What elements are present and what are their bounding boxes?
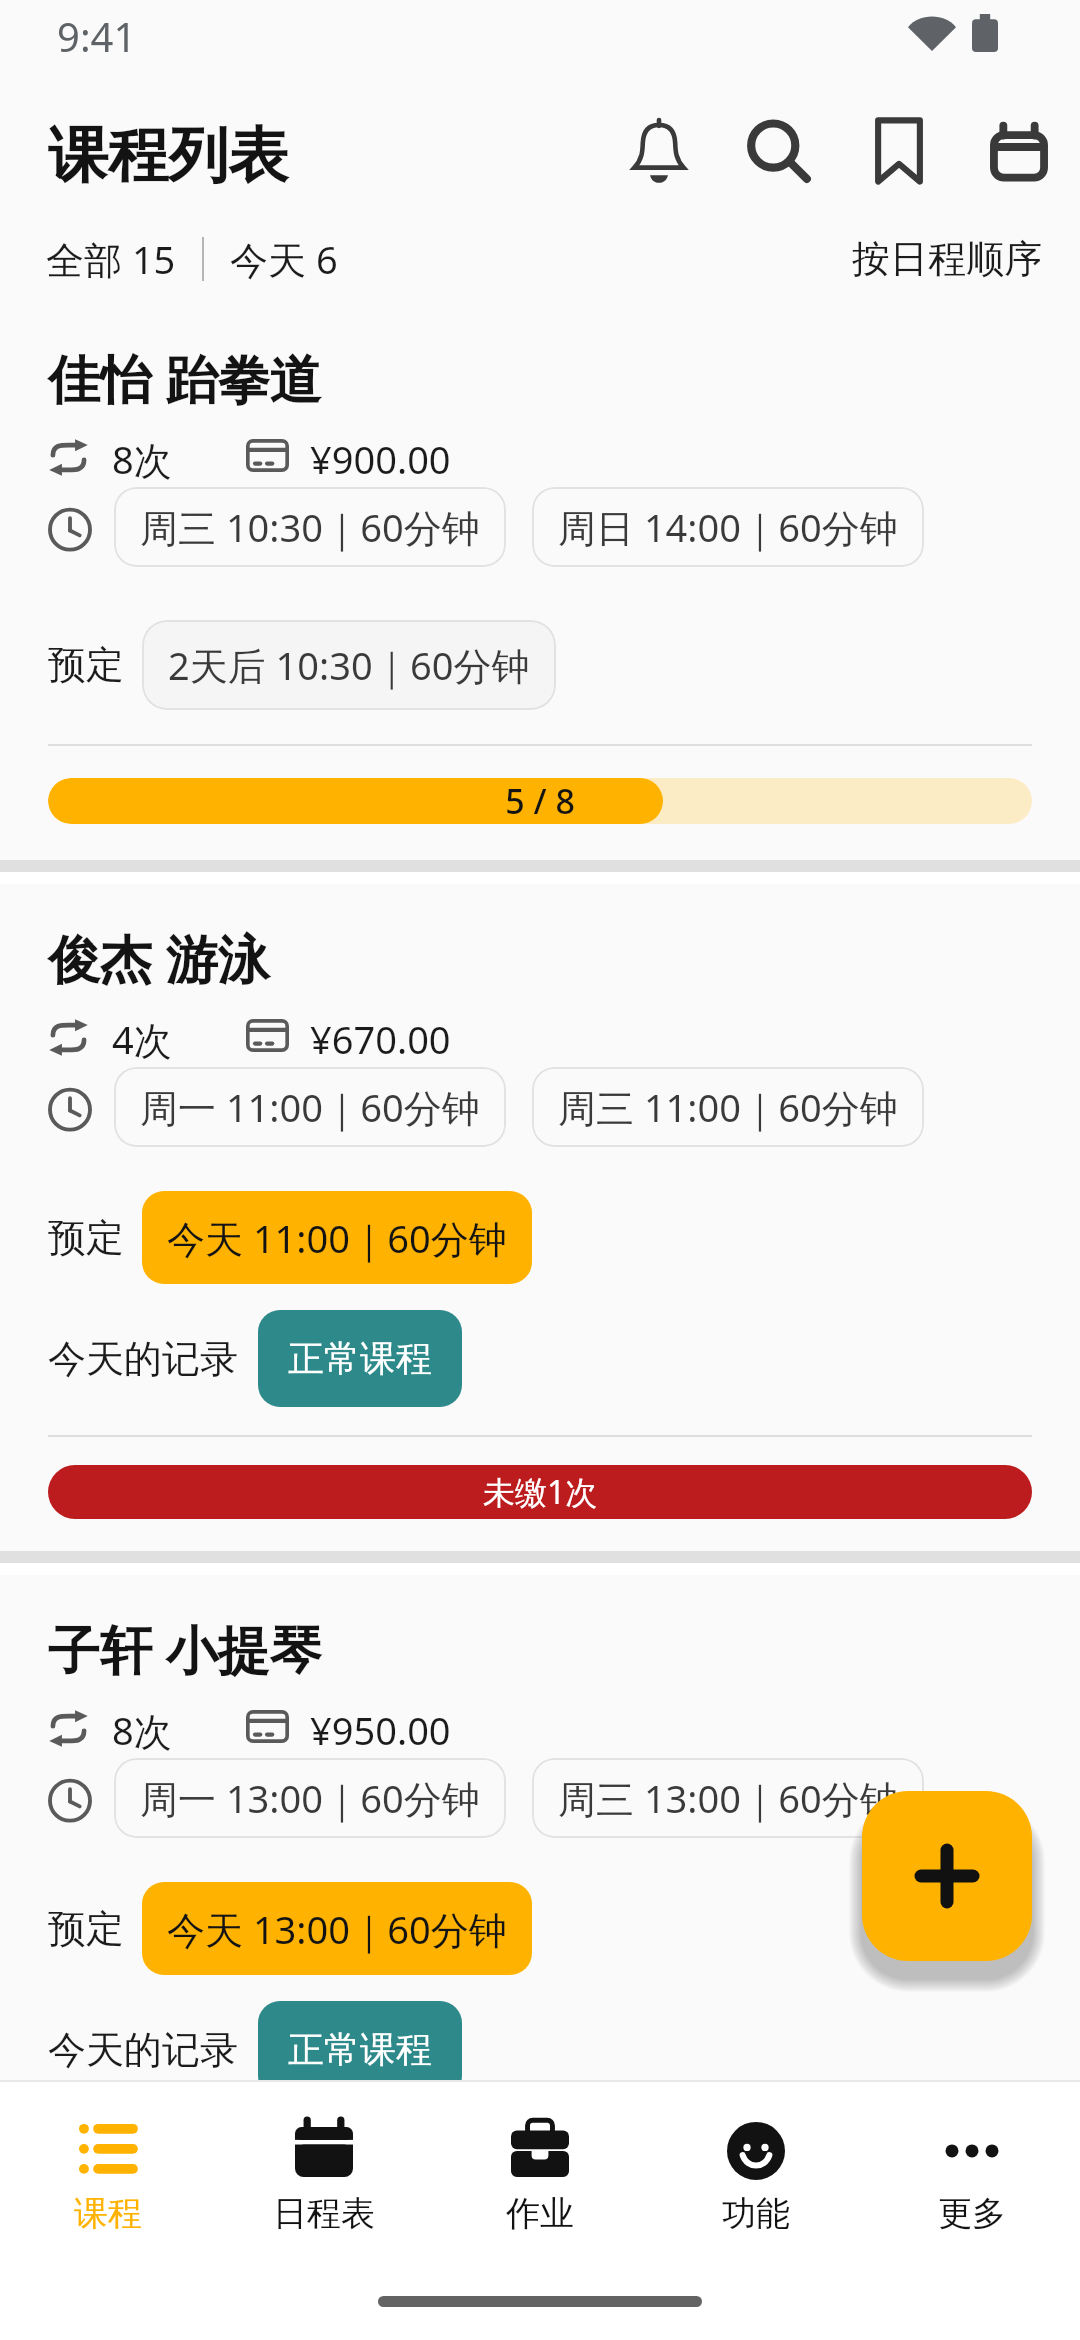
staticText: 周三 11:00｜60分钟 xyxy=(558,1081,898,1133)
staticText: 周日 14:00｜60分钟 xyxy=(558,501,898,553)
button[interactable]: 周一 11:00｜60分钟 xyxy=(114,1067,506,1147)
staticText: 更多 xyxy=(938,2192,1006,2235)
staticText: 周三 10:30｜60分钟 xyxy=(140,501,480,553)
button[interactable]: Add course xyxy=(862,1791,1032,1961)
staticText: ¥670.00 xyxy=(310,1013,451,1065)
button[interactable]: 课程 xyxy=(0,2117,216,2237)
staticText: 5 / 8 xyxy=(48,778,1032,824)
staticText: 功能 xyxy=(722,2192,790,2235)
staticText: 未缴1次 xyxy=(483,1470,598,1514)
button[interactable]: 功能 xyxy=(648,2117,864,2237)
staticText: 4次 xyxy=(112,1013,172,1065)
staticText: 今天的记录 xyxy=(48,1335,238,1383)
button[interactable]: 更多 xyxy=(864,2117,1080,2237)
button[interactable]: 作业 xyxy=(432,2117,648,2237)
staticText: 9:41 xyxy=(57,9,137,63)
staticText: 周一 11:00｜60分钟 xyxy=(140,1081,480,1133)
staticText: 正常课程 xyxy=(288,2027,432,2072)
staticText: ¥950.00 xyxy=(310,1704,451,1756)
button[interactable]: 周三 10:30｜60分钟 xyxy=(114,487,506,567)
staticText: 佳怡 跆拳道 xyxy=(48,342,322,413)
button[interactable]: 今天 11:00｜60分钟 xyxy=(142,1191,532,1284)
staticText: 日程表 xyxy=(273,2192,375,2235)
staticText: 8次 xyxy=(112,433,172,485)
button[interactable]: 周日 14:00｜60分钟 xyxy=(532,487,924,567)
staticText: 预定 xyxy=(48,641,124,689)
staticText: 课程 xyxy=(74,2192,142,2235)
staticText: 俊杰 游泳 xyxy=(48,922,270,993)
staticText: ¥900.00 xyxy=(310,433,451,485)
button[interactable]: 2天后 10:30｜60分钟 xyxy=(142,620,556,710)
staticText: 预定 xyxy=(48,1214,124,1262)
staticText: 作业 xyxy=(506,2192,574,2235)
button[interactable]: Search xyxy=(719,92,839,210)
button[interactable]: Bookmarks xyxy=(839,92,959,210)
button[interactable]: 正常课程 xyxy=(258,2001,462,2098)
staticText: 子轩 小提琴 xyxy=(48,1613,322,1684)
staticText: 周一 13:00｜60分钟 xyxy=(140,1772,480,1824)
button[interactable]: Calendar xyxy=(959,92,1079,210)
staticText: 今天 13:00｜60分钟 xyxy=(167,1903,507,1955)
staticText: 8次 xyxy=(112,1704,172,1756)
button[interactable]: 正常课程 xyxy=(258,1310,462,1407)
staticText: 全部 15 xyxy=(46,233,176,285)
button[interactable]: Notifications xyxy=(599,92,719,210)
staticText: 周三 13:00｜60分钟 xyxy=(558,1772,898,1824)
button[interactable]: 周三 13:00｜60分钟 xyxy=(532,1758,924,1838)
staticText: 今天的记录 xyxy=(48,2026,238,2074)
staticText: 今天 11:00｜60分钟 xyxy=(167,1212,507,1264)
button[interactable]: 周三 11:00｜60分钟 xyxy=(532,1067,924,1147)
staticText: 2天后 10:30｜60分钟 xyxy=(168,639,530,691)
button[interactable]: 周一 13:00｜60分钟 xyxy=(114,1758,506,1838)
button[interactable]: 日程表 xyxy=(216,2117,432,2237)
staticText: 正常课程 xyxy=(288,1336,432,1381)
staticText: 今天 6 xyxy=(230,233,338,285)
button[interactable]: 未缴1次 xyxy=(48,1465,1032,1519)
staticText: 预定 xyxy=(48,1905,124,1953)
staticText: 按日程顺序 xyxy=(852,235,1042,283)
button[interactable]: 今天 13:00｜60分钟 xyxy=(142,1882,532,1975)
staticText: 课程列表 xyxy=(48,118,288,194)
